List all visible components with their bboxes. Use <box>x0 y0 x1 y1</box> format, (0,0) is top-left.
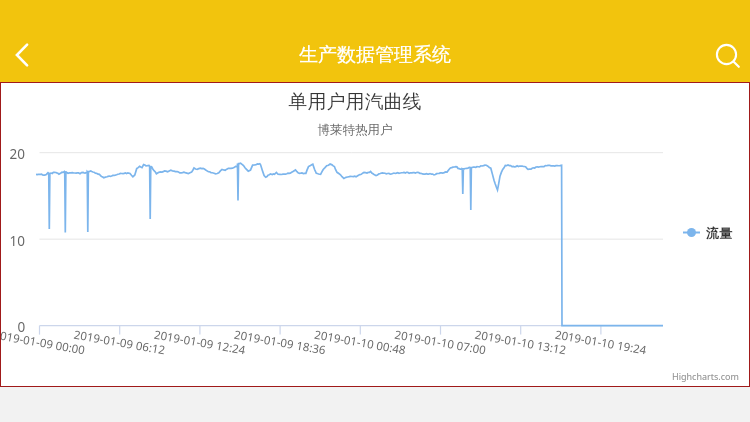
button[interactable]: Back <box>0 33 44 77</box>
staticText: 生产数据管理系统 <box>299 43 451 67</box>
button[interactable]: Search <box>703 32 749 78</box>
